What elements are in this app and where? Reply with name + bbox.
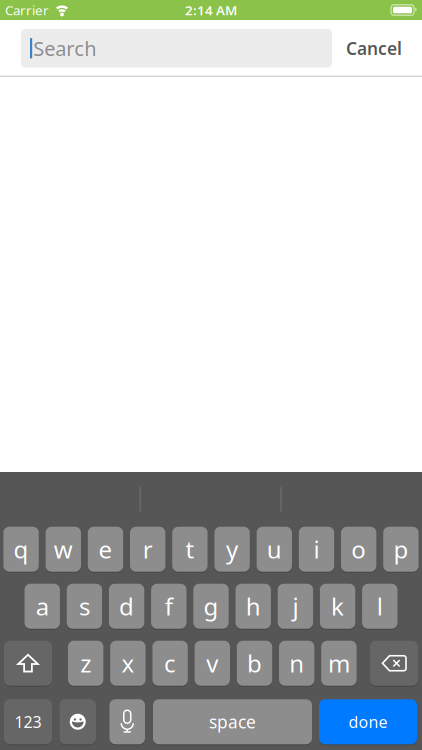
button[interactable]: u	[257, 527, 292, 572]
staticText: s	[79, 590, 90, 622]
button[interactable]: c	[152, 641, 188, 686]
button[interactable]: n	[279, 641, 314, 686]
button[interactable]: q	[3, 527, 39, 572]
staticText: g	[203, 590, 218, 622]
button[interactable]: m	[321, 641, 357, 686]
staticText: Carrier	[5, 1, 49, 19]
button[interactable]: x	[110, 641, 146, 686]
button[interactable]: g	[193, 584, 229, 629]
button[interactable]: space	[153, 699, 312, 744]
staticText: a	[36, 590, 49, 622]
button[interactable]: Shift	[4, 641, 52, 686]
button[interactable]: k	[320, 584, 355, 629]
button[interactable]: a	[24, 584, 60, 629]
button[interactable]: o	[341, 527, 376, 572]
staticText: q	[14, 533, 29, 565]
staticText: y	[226, 533, 238, 565]
staticText: p	[393, 533, 408, 565]
staticText: b	[247, 647, 262, 679]
staticText: k	[331, 590, 344, 622]
staticText: r	[143, 533, 153, 565]
staticText: h	[246, 590, 261, 622]
button[interactable]: w	[46, 527, 81, 572]
button[interactable]: j	[278, 584, 313, 629]
staticText: 123	[14, 711, 41, 732]
button[interactable]: p	[383, 527, 419, 572]
staticText: done	[348, 711, 387, 732]
button[interactable]: Dictation	[109, 699, 145, 744]
staticText: t	[185, 533, 194, 565]
staticText: e	[98, 533, 112, 565]
button[interactable]: Cancel	[346, 37, 422, 60]
staticText: f	[165, 590, 173, 622]
staticText: d	[119, 590, 134, 622]
button[interactable]: Delete	[370, 641, 418, 686]
staticText: 2:14 AM	[185, 1, 237, 19]
button[interactable]: h	[235, 584, 271, 629]
button[interactable]: Search	[21, 29, 332, 67]
staticText: c	[164, 647, 176, 679]
button[interactable]: Emoji	[59, 699, 96, 744]
staticText: l	[377, 590, 383, 622]
button[interactable]: e	[88, 527, 123, 572]
button[interactable]: y	[214, 527, 250, 572]
staticText: Cancel	[346, 37, 402, 60]
button[interactable]: d	[109, 584, 144, 629]
button[interactable]: r	[130, 527, 165, 572]
button[interactable]: l	[362, 584, 397, 629]
button[interactable]: z	[68, 641, 103, 686]
staticText: Search	[33, 35, 96, 62]
staticText: j	[292, 590, 298, 622]
button[interactable]: b	[237, 641, 272, 686]
staticText: u	[267, 533, 282, 565]
staticText: space	[209, 710, 256, 733]
button[interactable]: v	[195, 641, 230, 686]
staticText: m	[328, 647, 350, 679]
button[interactable]: t	[172, 527, 208, 572]
button[interactable]: done	[319, 699, 417, 744]
button[interactable]: i	[299, 527, 334, 572]
button[interactable]: f	[151, 584, 186, 629]
staticText: w	[54, 533, 73, 565]
staticText: o	[351, 533, 366, 565]
staticText: z	[80, 647, 91, 679]
staticText: i	[313, 533, 319, 565]
button[interactable]: Numbers	[4, 699, 52, 744]
button[interactable]: s	[67, 584, 102, 629]
staticText: x	[121, 647, 134, 679]
staticText: n	[289, 647, 304, 679]
staticText: v	[206, 647, 218, 679]
